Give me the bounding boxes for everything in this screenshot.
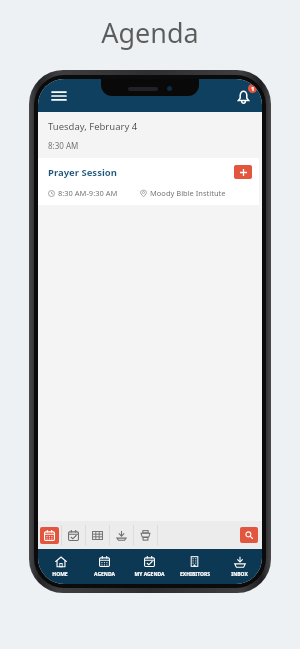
- button[interactable]: Download: [112, 527, 131, 544]
- button[interactable]: My schedule: [64, 527, 83, 544]
- staticText: Tuesday, February 4: [48, 120, 138, 133]
- staticText: Agenda: [101, 14, 199, 51]
- button[interactable]: Search: [240, 527, 258, 543]
- button[interactable]: Day view: [40, 527, 59, 544]
- staticText: MY AGENDA: [134, 571, 165, 578]
- button[interactable]: EXHIBITORS: [172, 549, 217, 584]
- button[interactable]: Notifications: [230, 83, 256, 109]
- staticText: AGENDA: [94, 571, 115, 578]
- button[interactable]: Grid view: [88, 527, 107, 544]
- button[interactable]: Prayer Session: [38, 158, 259, 205]
- staticText: INBOX: [231, 571, 248, 578]
- staticText: Moody Bible Institute: [150, 188, 226, 198]
- button[interactable]: Add to my agenda: [234, 165, 252, 179]
- staticText: Prayer Session: [48, 166, 117, 179]
- staticText: 8:30 AM-9:30 AM: [58, 188, 118, 198]
- button[interactable]: Print: [136, 527, 155, 544]
- button[interactable]: AGENDA: [82, 549, 127, 584]
- button[interactable]: Menu: [46, 83, 72, 109]
- staticText: 8:30 AM: [48, 140, 79, 151]
- button[interactable]: MY AGENDA: [127, 549, 172, 584]
- button[interactable]: INBOX: [217, 549, 262, 584]
- button[interactable]: HOME: [38, 549, 82, 584]
- staticText: 1: [251, 85, 255, 93]
- staticText: EXHIBITORS: [180, 571, 210, 578]
- staticText: HOME: [52, 571, 68, 578]
